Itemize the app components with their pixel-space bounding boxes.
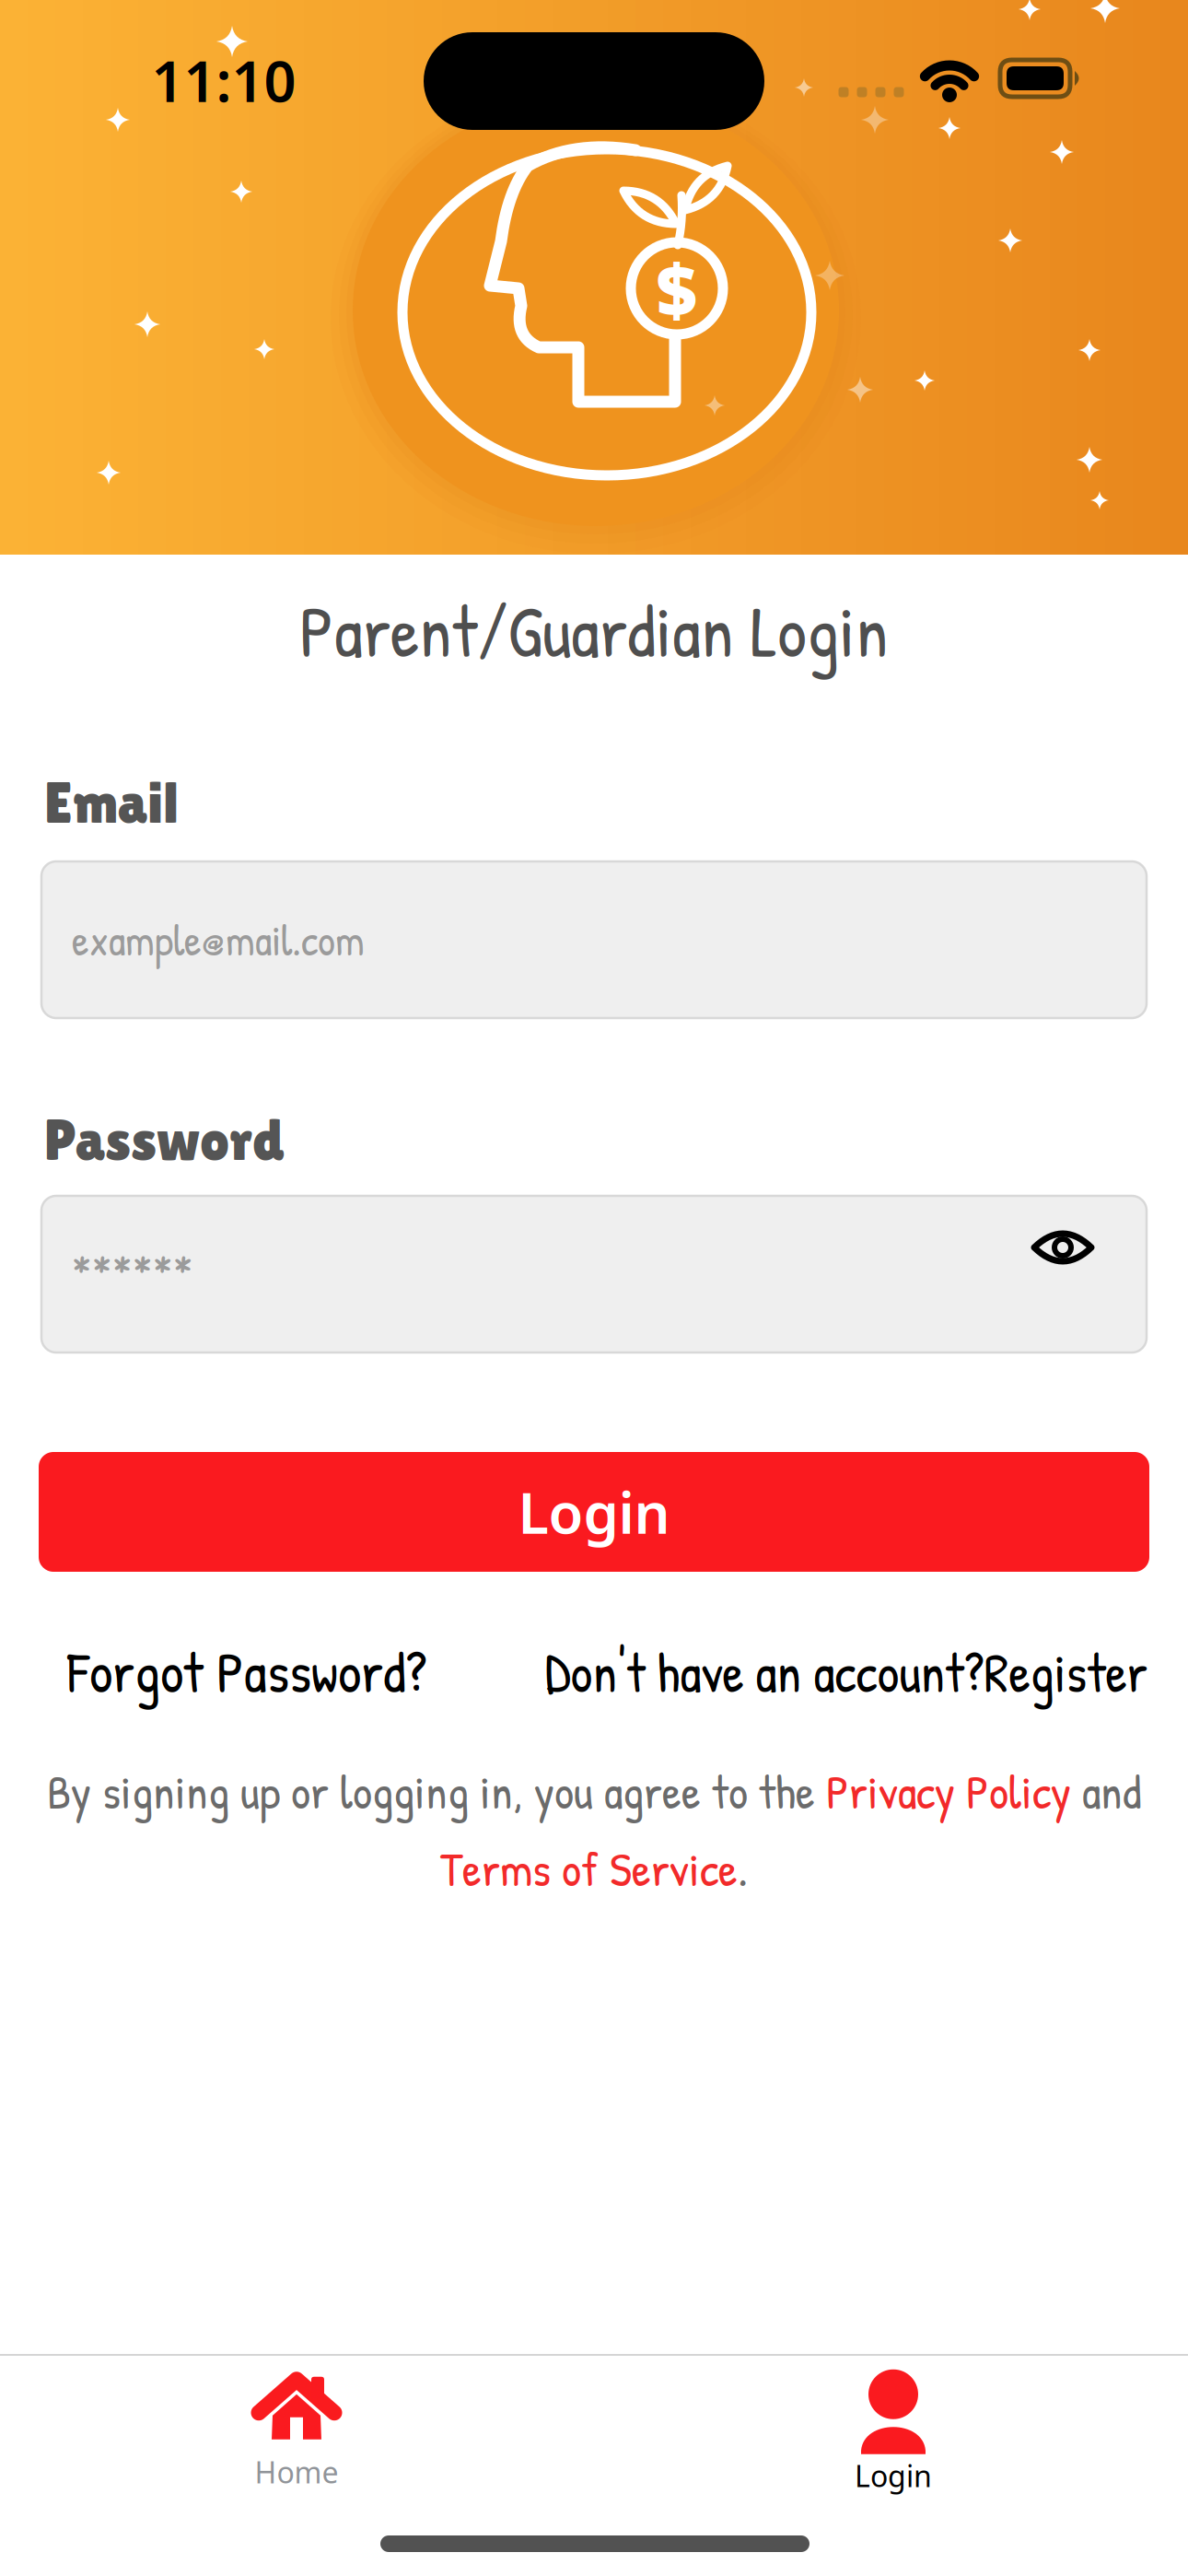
button[interactable]: Login <box>783 2359 1004 2506</box>
button[interactable]: Don't have an account?Register <box>545 1636 1148 1709</box>
staticText: example@mail.com <box>72 911 365 969</box>
staticText: Terms of Service <box>440 1836 738 1901</box>
staticText: Privacy Policy <box>826 1759 1071 1823</box>
button[interactable]: Password <box>41 1196 1147 1352</box>
staticText: Login <box>518 1474 670 1549</box>
staticText: Login <box>855 2456 932 2495</box>
button[interactable]: Privacy Policy <box>826 1759 1071 1823</box>
staticText: Forgot Password? <box>67 1632 426 1710</box>
staticText: By signing up or logging in, you agree t… <box>47 1759 826 1823</box>
staticText: Parent/Guardian Login <box>299 581 889 679</box>
staticText: ****** <box>72 1240 193 1307</box>
staticText: and <box>1071 1759 1141 1823</box>
staticText: Password <box>44 1107 285 1173</box>
staticText: . <box>738 1836 748 1901</box>
staticText: Email <box>44 769 179 835</box>
button[interactable]: Email <box>41 861 1147 1018</box>
staticText: Don't have an account?Register <box>545 1636 1148 1709</box>
staticText: 11:10 <box>151 43 296 118</box>
button[interactable]: Login <box>39 1452 1149 1572</box>
staticText: $ <box>656 241 698 336</box>
button[interactable]: Home <box>186 2355 407 2502</box>
staticText: Home <box>255 2452 338 2492</box>
button[interactable]: Forgot Password? <box>67 1632 426 1710</box>
button[interactable]: Show password <box>1017 1201 1109 1294</box>
button[interactable]: Terms of Service <box>440 1836 738 1901</box>
